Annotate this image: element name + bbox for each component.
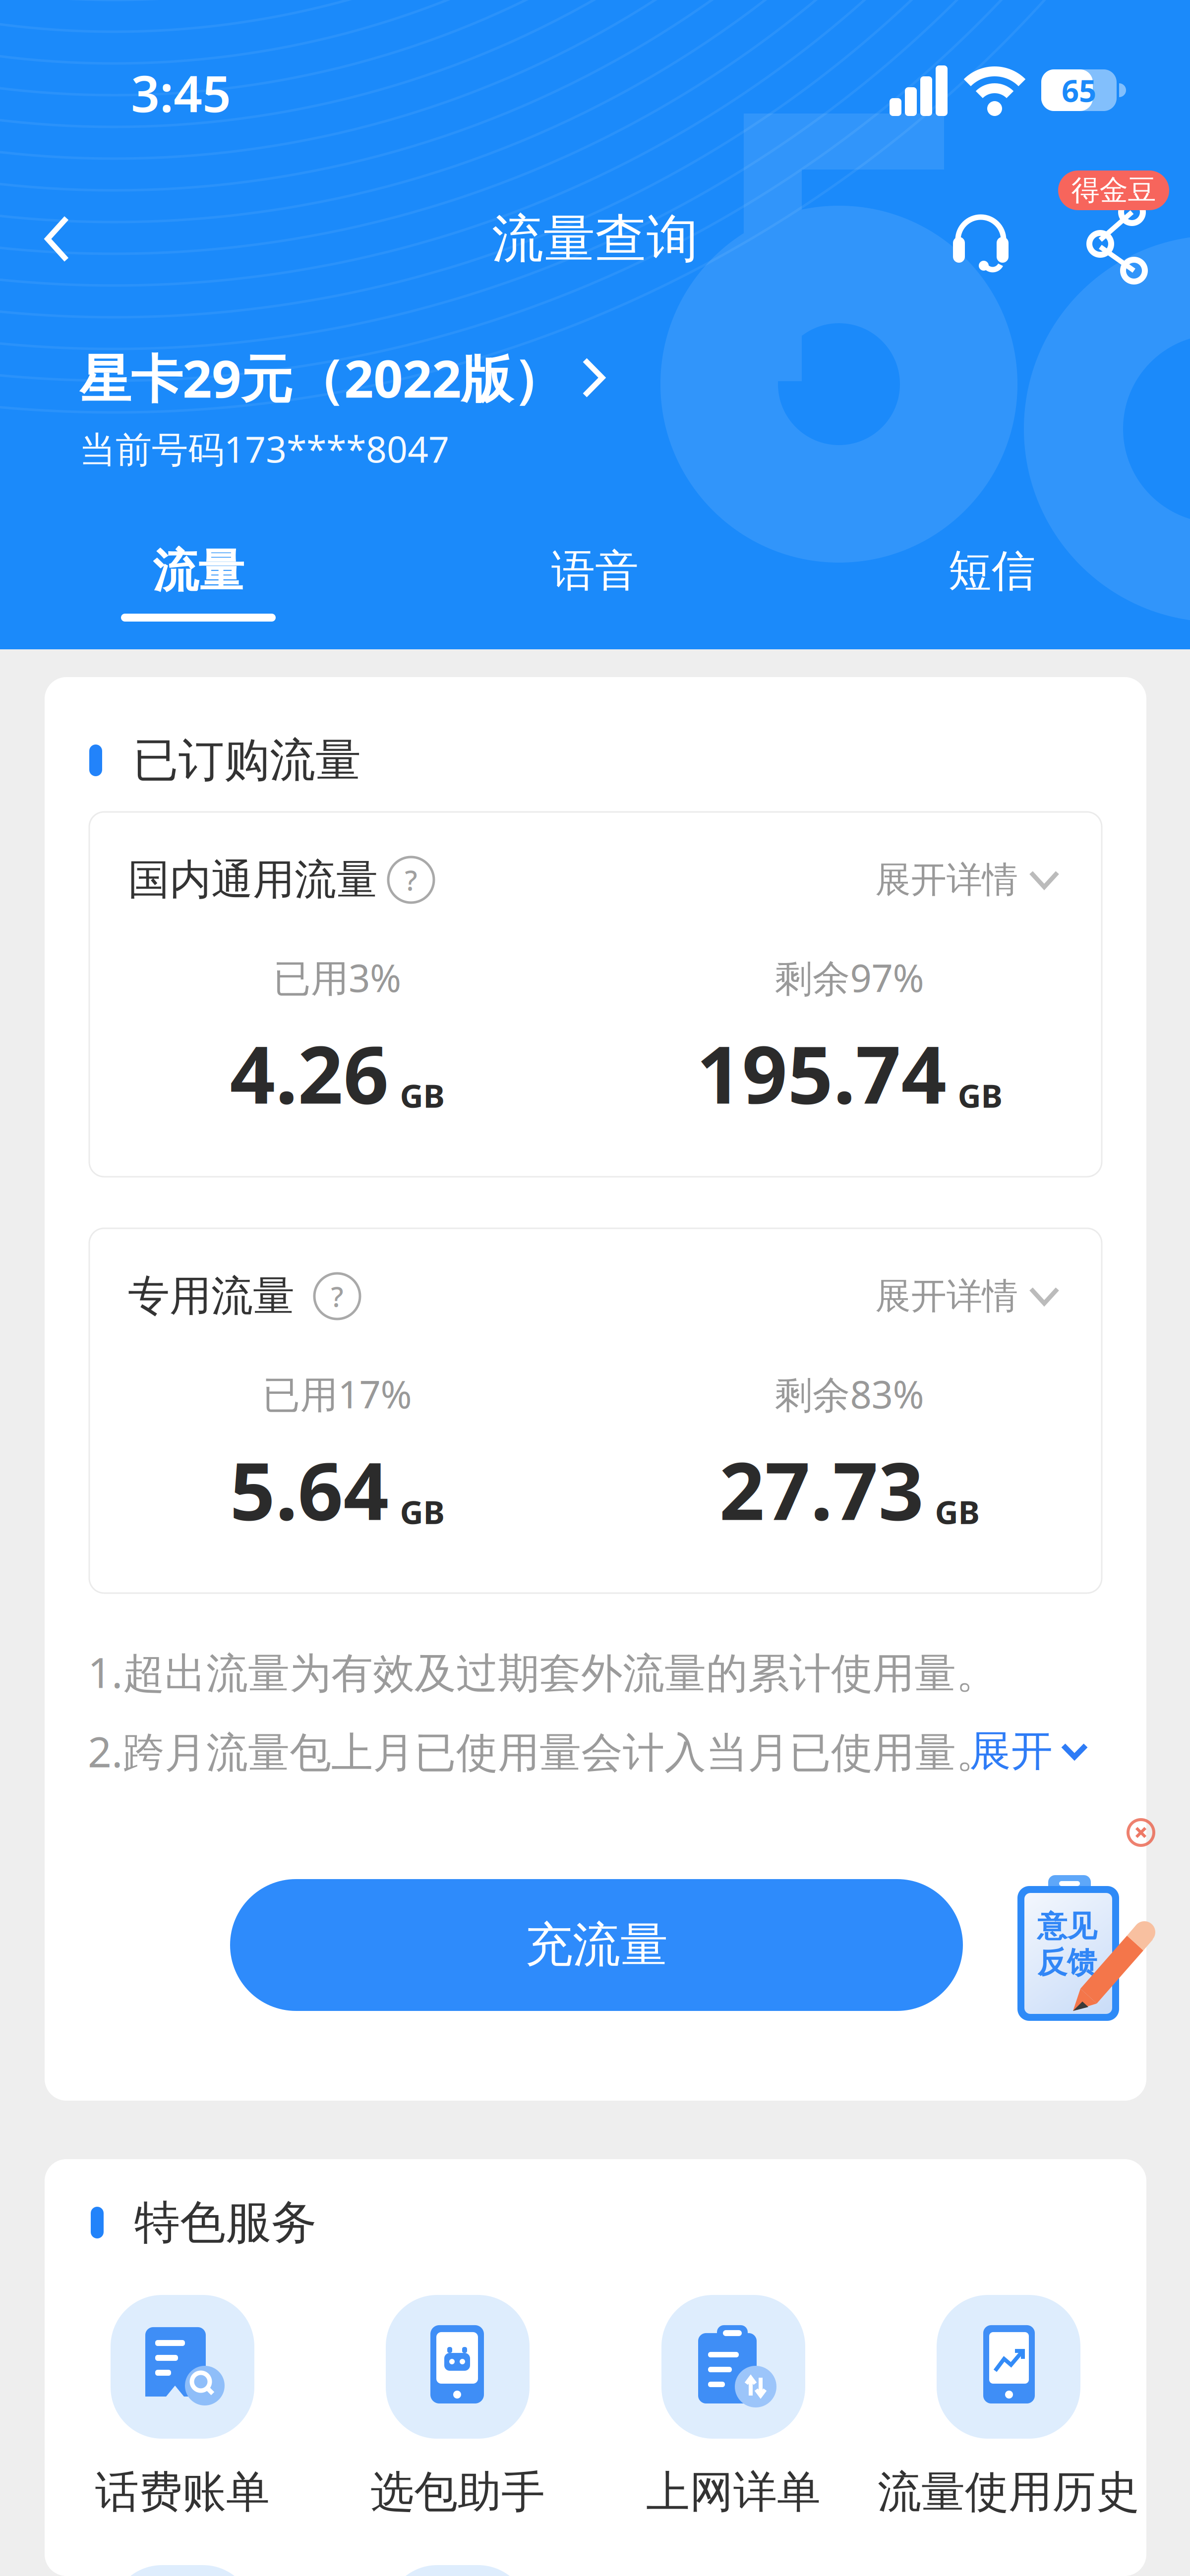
button[interactable]: 星卡29元（2022版）: [79, 343, 605, 412]
button[interactable]: 返回: [44, 215, 73, 263]
button[interactable]: 关闭: [1128, 1820, 1154, 1845]
staticText: 选包助手: [370, 2465, 545, 2519]
staticText: 流量: [153, 543, 244, 599]
staticText: 4.26: [230, 1020, 389, 1126]
staticText: 展开详情: [875, 858, 1018, 902]
button[interactable]: 选包助手: [321, 2268, 594, 2546]
button[interactable]: 客服: [951, 210, 1011, 270]
staticText: 充流量: [525, 1916, 668, 1974]
staticText: 流量使用历史: [878, 2465, 1139, 2519]
button[interactable]: 上网详单: [597, 2268, 870, 2546]
staticText: 3:45: [131, 59, 231, 126]
staticText: 短信: [948, 544, 1035, 598]
button[interactable]: 流量使用历史: [872, 2268, 1145, 2546]
button[interactable]: 展开详情: [875, 1269, 1060, 1323]
staticText: GB: [958, 1074, 1002, 1117]
button[interactable]: 说明: [314, 1273, 360, 1319]
staticText: 流量查询: [492, 207, 698, 271]
staticText: 话费账单: [95, 2465, 270, 2519]
staticText: 星卡29元（2022版）: [79, 343, 564, 412]
staticText: 已用3%: [273, 952, 401, 1002]
staticText: 国内通用流量: [128, 854, 378, 905]
staticText: ?: [331, 1278, 343, 1315]
staticText: 195.74: [696, 1020, 947, 1126]
button[interactable]: 语音: [397, 540, 793, 628]
staticText: GB: [400, 1490, 445, 1533]
staticText: 27.73: [719, 1437, 924, 1542]
staticText: 65: [1062, 70, 1096, 110]
staticText: 已订购流量: [133, 732, 361, 788]
button[interactable]: 短信: [793, 540, 1190, 628]
button[interactable]: 意见反馈: [1011, 1817, 1160, 2025]
button[interactable]: 展开详情: [875, 853, 1060, 907]
staticText: 2.跨月流量包上月已使用量会计入当月已使用量。: [88, 1724, 998, 1779]
staticText: 上网详单: [646, 2465, 821, 2519]
staticText: 1.超出流量为有效及过期套外流量的累计使用量。: [88, 1644, 998, 1700]
staticText: 得金豆: [1071, 173, 1156, 208]
staticText: 语音: [551, 544, 639, 598]
button[interactable]: 展开: [969, 1724, 1088, 1778]
staticText: 剩余83%: [775, 1369, 924, 1419]
button[interactable]: 充流量: [230, 1879, 963, 2011]
staticText: GB: [400, 1074, 445, 1117]
staticText: 5.64: [230, 1437, 389, 1542]
staticText: 剩余97%: [775, 952, 924, 1002]
staticText: 展开: [969, 1726, 1053, 1777]
button[interactable]: 说明: [388, 857, 434, 903]
staticText: ?: [405, 861, 417, 898]
staticText: GB: [935, 1490, 980, 1533]
staticText: 展开详情: [875, 1274, 1018, 1318]
staticText: 当前号码173****8047: [79, 424, 449, 473]
staticText: 特色服务: [134, 2195, 317, 2251]
button[interactable]: 话费账单: [46, 2268, 319, 2546]
staticText: 意见 反馈: [1037, 1908, 1097, 1981]
staticText: 专用流量: [128, 1271, 295, 1322]
staticText: 已用17%: [263, 1369, 412, 1419]
button[interactable]: 流量: [0, 540, 397, 628]
button[interactable]: 分享: [1090, 204, 1144, 279]
